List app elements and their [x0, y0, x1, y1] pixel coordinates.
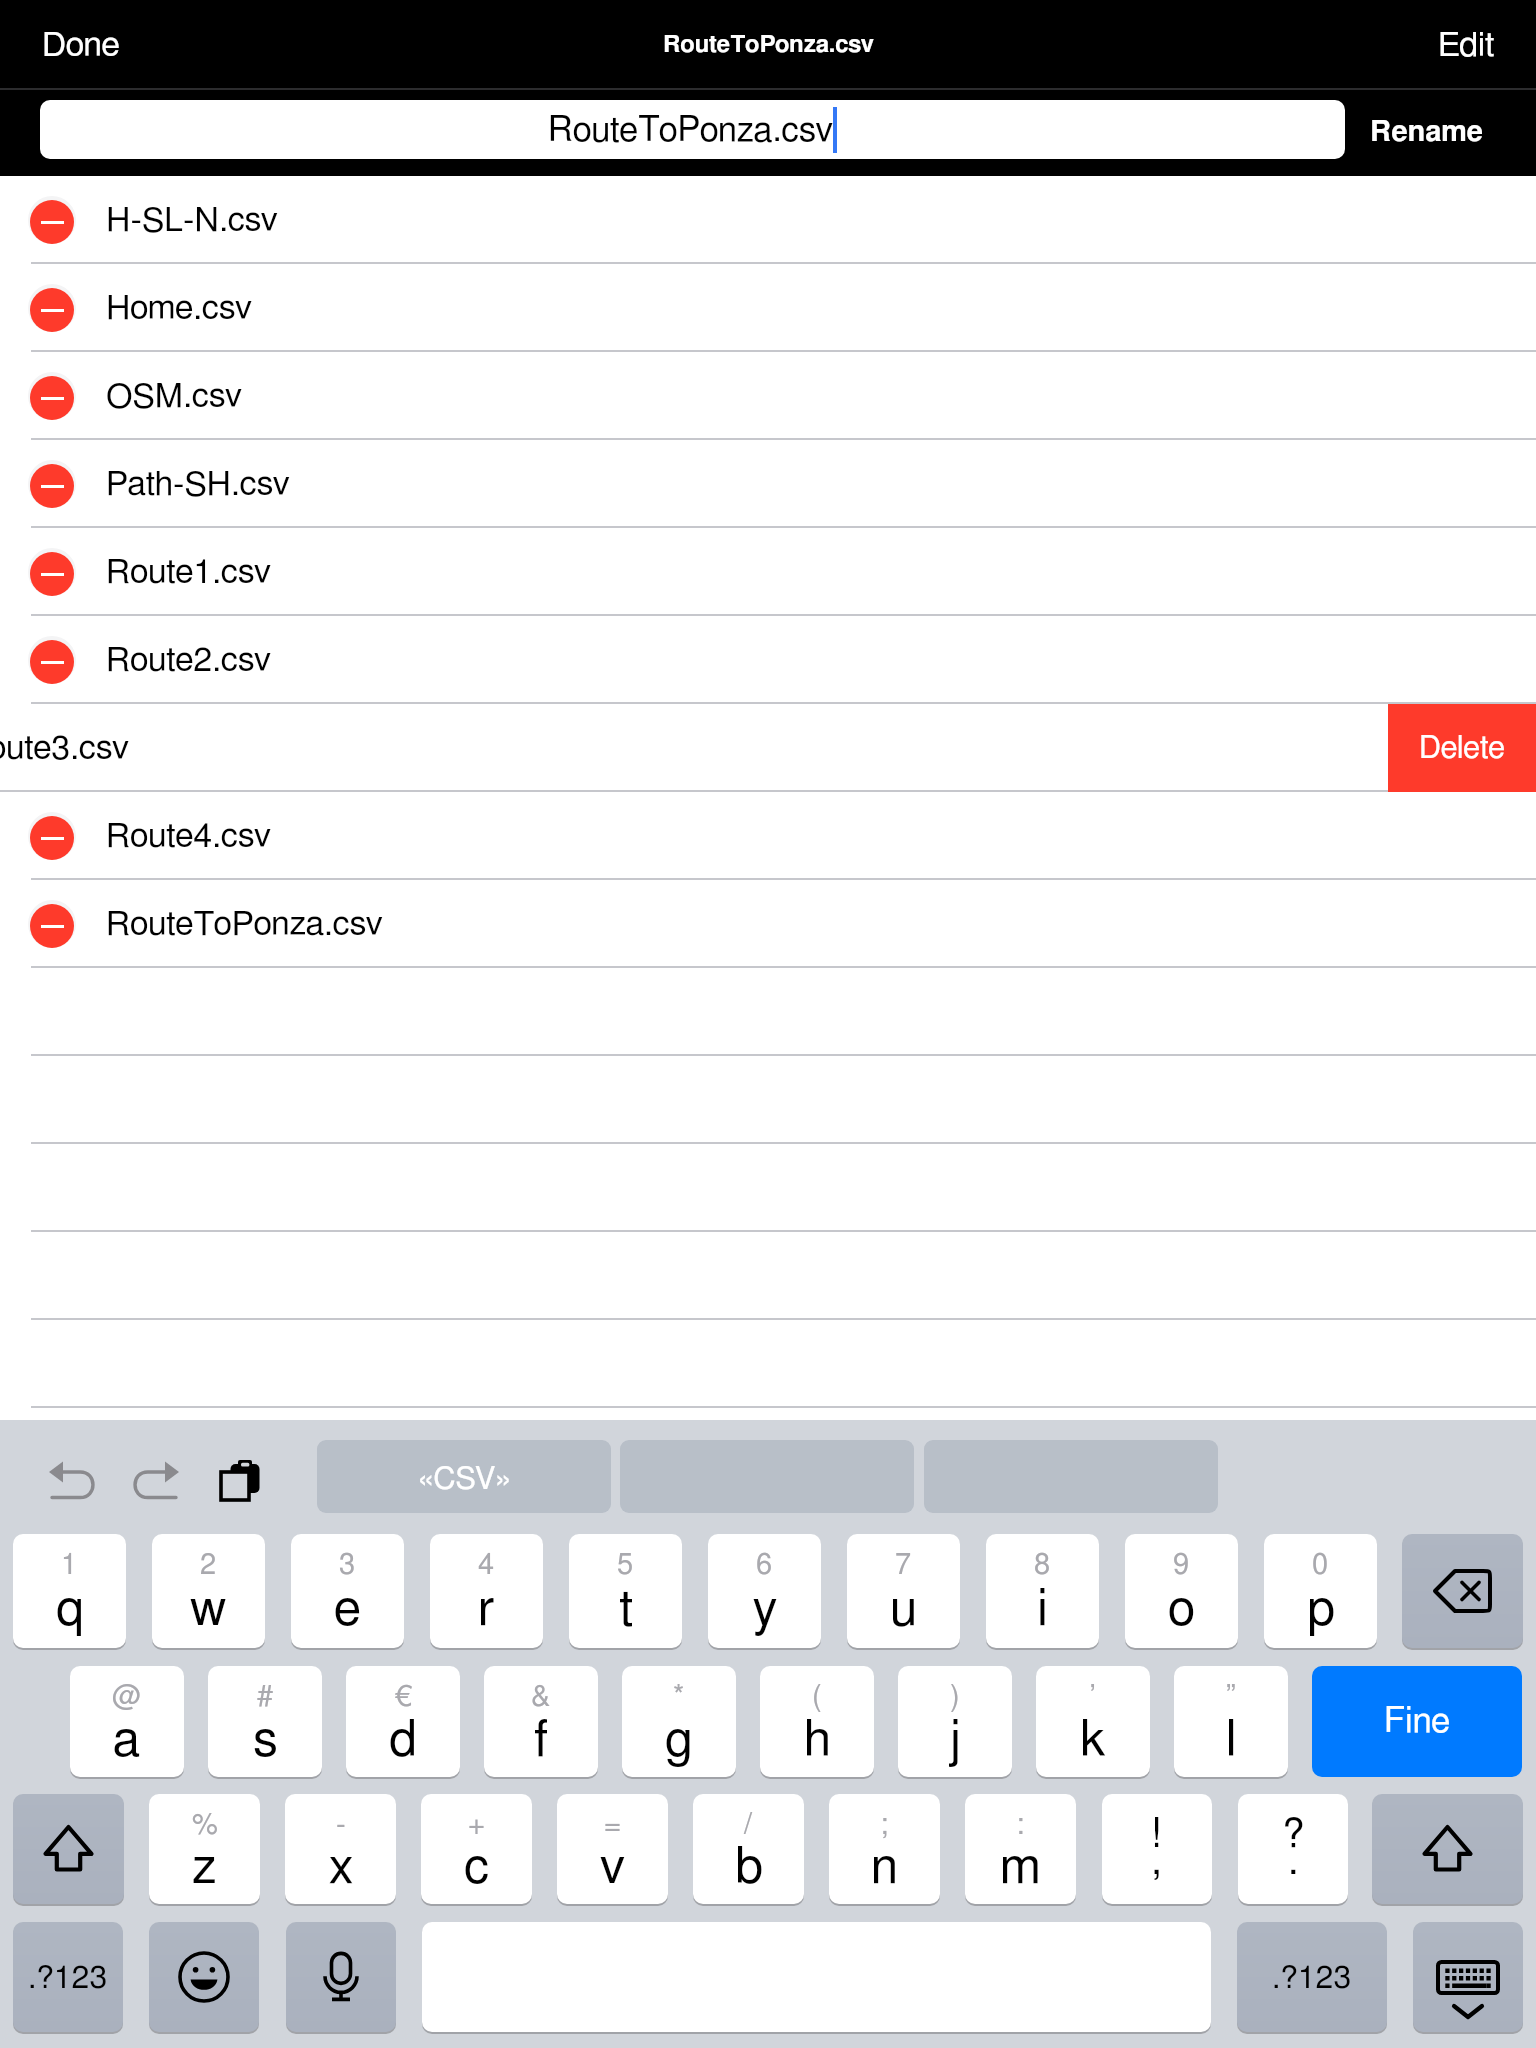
staticText: k [1080, 1716, 1106, 1766]
other: Remove RouteToPonza.csv [30, 904, 74, 948]
staticText: @ [112, 1683, 142, 1712]
staticText: 4 [478, 1551, 495, 1580]
staticText: z [192, 1843, 217, 1893]
button[interactable]: % [149, 1794, 260, 1904]
staticText: Route2.csv [106, 644, 271, 678]
button[interactable]: Redo [131, 1454, 181, 1500]
staticText: + [468, 1811, 485, 1840]
staticText: Route4.csv [106, 820, 271, 854]
button[interactable]: Fine [1312, 1666, 1522, 1777]
button[interactable]: «CSV» [317, 1440, 611, 1513]
button[interactable]: # [208, 1666, 322, 1777]
button[interactable]: Shift [13, 1794, 124, 1904]
button[interactable]: Rename [1370, 118, 1484, 147]
button[interactable]: Remove Home.csv [0, 264, 1536, 352]
button[interactable]: 4 [430, 1534, 543, 1648]
button[interactable]: / [693, 1794, 804, 1904]
button[interactable]: Remove Route4.csv [0, 792, 1536, 880]
staticText: ’ [1089, 1683, 1097, 1712]
button[interactable]: Remove Route1.csv [0, 528, 1536, 616]
staticText: t [619, 1585, 633, 1635]
staticText: - [336, 1811, 346, 1840]
button[interactable]: ’ [1036, 1666, 1150, 1777]
staticText: / [744, 1811, 753, 1840]
button[interactable]: Number keyboard [1237, 1922, 1387, 2032]
button[interactable]: 0 [1264, 1534, 1377, 1648]
button[interactable]: Emoji [149, 1922, 259, 2032]
staticText: 3 [339, 1551, 356, 1580]
button[interactable]: 8 [986, 1534, 1099, 1648]
staticText: Delete [1419, 733, 1505, 764]
staticText: r [478, 1585, 495, 1635]
button[interactable]: ? [1238, 1794, 1348, 1904]
staticText: 0 [1312, 1551, 1329, 1580]
button[interactable]: @ [70, 1666, 184, 1777]
staticText: Route1.csv [106, 556, 271, 590]
staticText: Route3.csv [0, 732, 129, 766]
button[interactable]: ( [760, 1666, 874, 1777]
button[interactable]: Edit [1438, 27, 1495, 61]
staticText: p [1307, 1585, 1335, 1635]
staticText: v [600, 1843, 625, 1893]
button[interactable]: Remove OSM.csv [0, 352, 1536, 440]
button[interactable]: Done [42, 27, 120, 61]
staticText: * [673, 1683, 685, 1712]
button[interactable]: - [285, 1794, 396, 1904]
staticText: «CSV» [418, 1464, 511, 1495]
button[interactable]: 6 [708, 1534, 821, 1648]
staticText: n [871, 1843, 898, 1893]
staticText: s [253, 1716, 278, 1766]
button[interactable]: Delete [1388, 704, 1536, 792]
staticText: = [604, 1811, 621, 1840]
button[interactable]: 9 [1125, 1534, 1238, 1648]
button[interactable]: 3 [291, 1534, 404, 1648]
button[interactable]: Backspace [1402, 1534, 1523, 1648]
staticText: b [735, 1843, 763, 1893]
staticText: Done [42, 29, 120, 63]
staticText: % [192, 1811, 218, 1840]
staticText: .?123 [1272, 1962, 1352, 1994]
button[interactable]: Paste [216, 1454, 262, 1502]
button[interactable]: Remove RouteToPonza.csv [0, 880, 1536, 968]
staticText: f [534, 1716, 548, 1766]
button[interactable]: : [965, 1794, 1076, 1904]
staticText: , [1151, 1842, 1163, 1882]
button[interactable]: Route3.csv [0, 704, 1536, 792]
button[interactable]: Remove Path-SH.csv [0, 440, 1536, 528]
other: Remove H-SL-N.csv [30, 200, 74, 244]
other: Remove Route4.csv [30, 816, 74, 860]
button[interactable]: € [346, 1666, 460, 1777]
button[interactable]: 2 [152, 1534, 265, 1648]
staticText: 9 [1173, 1551, 1190, 1580]
staticText: ; [881, 1811, 889, 1840]
button[interactable]: + [421, 1794, 532, 1904]
button[interactable]: & [484, 1666, 598, 1777]
staticText: o [1168, 1585, 1195, 1635]
button[interactable]: Dictation [286, 1922, 396, 2032]
staticText: 8 [1034, 1551, 1051, 1580]
button[interactable]: Number keyboard [13, 1922, 123, 2032]
button[interactable]: 7 [847, 1534, 960, 1648]
other: Remove Home.csv [30, 288, 74, 332]
button[interactable]: Undo [47, 1454, 97, 1500]
button[interactable]: ; [829, 1794, 940, 1904]
staticText: ( [812, 1683, 822, 1712]
button[interactable]: Hide keyboard [1413, 1922, 1523, 2032]
button[interactable]: Shift [1372, 1794, 1523, 1904]
button[interactable]: 1 [13, 1534, 126, 1648]
button[interactable]: ! [1102, 1794, 1212, 1904]
button[interactable]: Remove H-SL-N.csv [0, 176, 1536, 264]
button[interactable]: ” [1174, 1666, 1288, 1777]
button[interactable]: Remove Route2.csv [0, 616, 1536, 704]
staticText: i [1037, 1585, 1049, 1635]
staticText: RouteToPonza.csv [548, 113, 833, 148]
button[interactable]: ) [898, 1666, 1012, 1777]
other: Remove Route1.csv [30, 552, 74, 596]
button[interactable]: 5 [569, 1534, 682, 1648]
button[interactable]: * [622, 1666, 736, 1777]
button[interactable]: = [557, 1794, 668, 1904]
staticText: y [753, 1585, 777, 1635]
